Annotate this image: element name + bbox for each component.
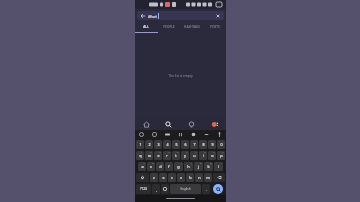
button[interactable]: 9 — [208, 151, 216, 160]
button[interactable]: 1 — [136, 151, 144, 160]
button[interactable]: 5 — [172, 151, 180, 160]
staticText: 2 — [148, 142, 151, 147]
staticText: 2 — [150, 151, 152, 154]
staticText: # — [152, 162, 154, 165]
button[interactable]: Keyboard tool 5 — [200, 130, 213, 139]
staticText: 5 — [177, 151, 179, 154]
button[interactable]: 0 — [217, 140, 225, 149]
staticText: _ — [162, 162, 163, 165]
staticText: 9 — [211, 142, 214, 147]
button[interactable]: c — [168, 173, 176, 182]
button[interactable]: Keyboard tool 1 — [148, 130, 161, 139]
staticText: 3 — [157, 142, 160, 147]
staticText: y — [184, 153, 186, 158]
staticText: 6 — [184, 142, 187, 147]
button[interactable]: 7 — [190, 140, 198, 149]
button[interactable]: Clear — [215, 13, 221, 19]
staticText: 9 — [213, 151, 215, 154]
staticText: u — [193, 153, 196, 158]
staticText: 7 — [193, 142, 196, 147]
staticText: ( — [181, 162, 182, 165]
button[interactable]: Search — [157, 118, 180, 130]
button[interactable]: b — [186, 173, 194, 182]
button[interactable]: 0 — [217, 151, 225, 160]
button[interactable]: 9 — [208, 140, 216, 149]
button[interactable]: Notifications — [180, 118, 203, 130]
staticText: @ — [210, 162, 212, 165]
button[interactable]: 4 — [163, 140, 171, 149]
staticText: - — [171, 162, 172, 165]
button[interactable]: Keyboard tool 2 — [161, 130, 174, 139]
button[interactable]: 4 — [163, 151, 171, 160]
button[interactable]: @ — [204, 162, 213, 171]
button[interactable]: 5 — [172, 140, 180, 149]
button[interactable]: ( — [174, 162, 183, 171]
staticText: ALL — [143, 25, 149, 29]
staticText: 5 — [175, 142, 178, 147]
staticText: o — [211, 153, 214, 158]
button[interactable]: Back — [140, 13, 146, 19]
button[interactable]: Profile — [203, 118, 226, 130]
button[interactable]: , — [152, 184, 160, 194]
staticText: j — [198, 164, 199, 169]
button[interactable]: 3 — [154, 151, 162, 160]
button[interactable]: Keyboard tool 4 — [187, 130, 200, 139]
button[interactable]: m — [204, 173, 212, 182]
button[interactable]: Backspace — [213, 173, 225, 182]
staticText: ?123 — [140, 187, 147, 191]
button[interactable]: _ — [156, 162, 164, 171]
button[interactable]: Emoji — [161, 184, 169, 194]
staticText: English — [180, 187, 191, 191]
button[interactable]: " — [214, 162, 223, 171]
staticText: w — [148, 153, 151, 158]
button[interactable]: v — [177, 173, 185, 182]
button[interactable]: z — [150, 173, 158, 182]
button[interactable]: ?123 — [136, 184, 151, 194]
staticText: 0 — [220, 142, 223, 147]
button[interactable]: n — [195, 173, 203, 182]
button[interactable]: - — [165, 162, 173, 171]
button[interactable]: ALL — [135, 22, 157, 32]
staticText: l — [218, 164, 219, 169]
staticText: " — [221, 162, 222, 165]
staticText: r — [166, 153, 168, 158]
staticText: POSTS — [210, 25, 220, 29]
button[interactable]: 7 — [190, 151, 198, 160]
button[interactable]: 6 — [181, 151, 189, 160]
button[interactable]: Home — [135, 118, 157, 130]
staticText: 4 — [168, 151, 170, 154]
button[interactable]: 8 — [199, 151, 207, 160]
staticText: PEOPLE — [163, 25, 175, 29]
staticText: c — [171, 175, 173, 180]
button[interactable]: Keyboard tool 3 — [174, 130, 187, 139]
button[interactable]: # — [147, 162, 155, 171]
button[interactable]: ) — [184, 162, 193, 171]
staticText: a — [141, 164, 144, 169]
button[interactable]: Back — [137, 11, 224, 20]
staticText: The list is empty — [168, 74, 193, 78]
button[interactable]: . — [202, 184, 210, 194]
staticText: 8 — [204, 151, 206, 154]
staticText: v — [180, 175, 182, 180]
button[interactable]: & — [194, 162, 203, 171]
button[interactable]: Keyboard tool 0 — [135, 130, 148, 139]
staticText: e — [157, 153, 160, 158]
button[interactable]: 3 — [154, 140, 162, 149]
button[interactable]: Shift — [136, 173, 149, 182]
button[interactable]: PEOPLE — [157, 22, 180, 32]
staticText: 7 — [195, 151, 197, 154]
button[interactable]: Keyboard tool 6 — [213, 130, 226, 139]
button[interactable]: Search — [211, 184, 225, 194]
button[interactable]: 6 — [181, 140, 189, 149]
button[interactable]: 8 — [199, 140, 207, 149]
button[interactable]: 2 — [145, 151, 153, 160]
button[interactable]: * — [138, 162, 146, 171]
staticText: x — [162, 175, 165, 180]
button[interactable]: x — [159, 173, 167, 182]
button[interactable]: 2 — [145, 140, 153, 149]
button[interactable]: HASHTAGS — [180, 22, 203, 32]
button[interactable]: 1 — [136, 140, 144, 149]
staticText: g — [177, 164, 180, 169]
button[interactable]: English — [170, 184, 201, 194]
button[interactable]: POSTS — [203, 22, 226, 32]
